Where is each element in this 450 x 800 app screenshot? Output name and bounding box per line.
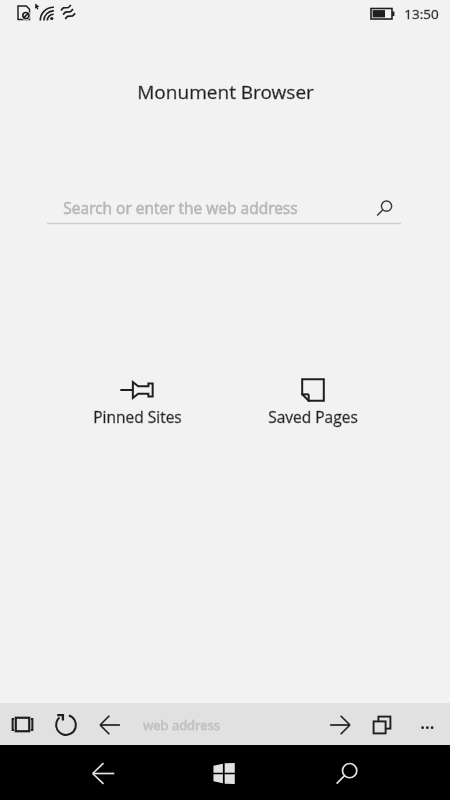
staticText: Search or enter the web address (63, 197, 298, 218)
button[interactable]: Search (330, 757, 364, 791)
staticText: Saved Pages (268, 406, 358, 427)
staticText: Search or enter the web address (63, 197, 298, 218)
button[interactable]: Refresh (49, 711, 83, 738)
staticText: web address (143, 716, 220, 734)
staticText: 13:50 (404, 5, 439, 23)
button[interactable]: Start (207, 756, 241, 790)
button[interactable]: Forward (323, 711, 357, 738)
button[interactable]: Tabs (365, 711, 399, 738)
button[interactable]: Search (370, 194, 400, 224)
button[interactable]: Back (86, 756, 120, 790)
button[interactable]: More options (411, 711, 445, 738)
staticText: Pinned Sites (93, 406, 182, 427)
staticText: Monument Browser (137, 79, 314, 105)
button[interactable]: Back (93, 711, 127, 738)
staticText: web address (143, 716, 220, 734)
staticText: Saved Pages (268, 406, 358, 427)
button[interactable]: Saved Pages (237, 378, 389, 427)
staticText: Pinned Sites (93, 406, 182, 427)
button[interactable]: Search or enter the web address (63, 192, 390, 222)
button[interactable]: Reading view (5, 711, 39, 738)
button[interactable]: Pinned Sites (61, 378, 213, 427)
staticText: Monument Browser (137, 79, 314, 105)
staticText: 13:50 (404, 5, 439, 23)
